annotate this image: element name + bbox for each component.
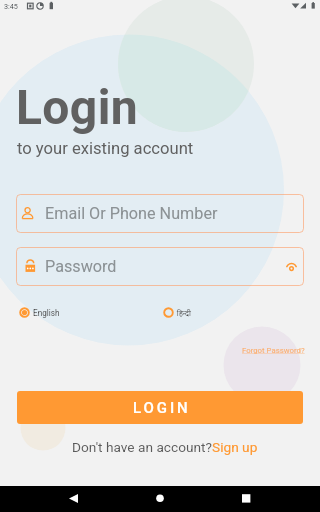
button[interactable]: हिन्दी [163, 307, 191, 318]
button[interactable]: Show password [278, 254, 304, 280]
staticText: to your existing account [17, 139, 194, 158]
staticText: Don't have an account?Sign up [72, 439, 258, 455]
button[interactable]: Don't have an account?Sign up [72, 439, 258, 455]
staticText: Email Or Phone Number [45, 204, 218, 223]
button[interactable]: English [19, 307, 60, 318]
staticText: Login [16, 79, 139, 135]
staticText: हिन्दी [177, 308, 191, 318]
staticText: LOGIN [133, 399, 191, 417]
staticText: Forgot Password? [242, 346, 305, 355]
staticText: Password [45, 257, 117, 276]
button[interactable]: Email Or Phone Number [16, 194, 304, 233]
staticText: 3:45 [4, 2, 18, 10]
staticText: English [33, 308, 60, 318]
button[interactable]: Password [16, 247, 304, 286]
button[interactable]: LOGIN [17, 391, 303, 424]
button[interactable]: Forgot Password? [242, 346, 305, 355]
